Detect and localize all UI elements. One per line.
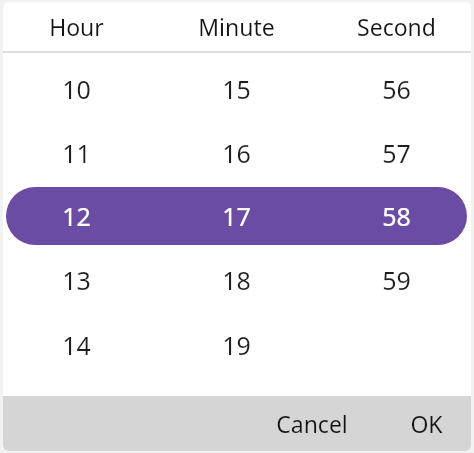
button[interactable]: 56	[336, 65, 456, 113]
staticText: Hour	[49, 11, 104, 42]
button[interactable]: Cancel	[262, 400, 362, 447]
button[interactable]: 11	[16, 129, 136, 177]
staticText: 13	[62, 263, 91, 297]
staticText: 19	[222, 328, 251, 362]
staticText: 15	[222, 72, 251, 106]
staticText: 12	[62, 199, 91, 233]
staticText: Cancel	[276, 408, 348, 439]
staticText: 10	[62, 72, 91, 106]
staticText: 16	[222, 136, 251, 170]
button[interactable]: 19	[176, 321, 296, 369]
staticText: 57	[382, 136, 411, 170]
button[interactable]: 17	[176, 192, 296, 240]
button[interactable]: 14	[16, 321, 136, 369]
button[interactable]: Hour	[3, 2, 151, 51]
button[interactable]: 57	[336, 129, 456, 177]
button[interactable]	[6, 187, 467, 245]
button[interactable]: 16	[176, 129, 296, 177]
button[interactable]: Second	[321, 2, 471, 51]
staticText: 56	[382, 72, 411, 106]
staticText: 14	[62, 328, 91, 362]
staticText: OK	[410, 408, 443, 439]
button[interactable]: 59	[336, 256, 456, 304]
staticText: 58	[382, 199, 411, 233]
staticText: 18	[222, 263, 251, 297]
staticText: Second	[357, 11, 436, 42]
button[interactable]: 18	[176, 256, 296, 304]
staticText: 59	[382, 263, 411, 297]
button[interactable]: 12	[16, 192, 136, 240]
button[interactable]: Minute	[161, 2, 311, 51]
staticText: 17	[222, 199, 251, 233]
staticText: Minute	[198, 11, 275, 42]
staticText: 11	[62, 136, 91, 170]
button[interactable]: 13	[16, 256, 136, 304]
button[interactable]: 15	[176, 65, 296, 113]
button[interactable]: 10	[16, 65, 136, 113]
button[interactable]: 58	[336, 192, 456, 240]
button[interactable]: OK	[396, 400, 457, 447]
